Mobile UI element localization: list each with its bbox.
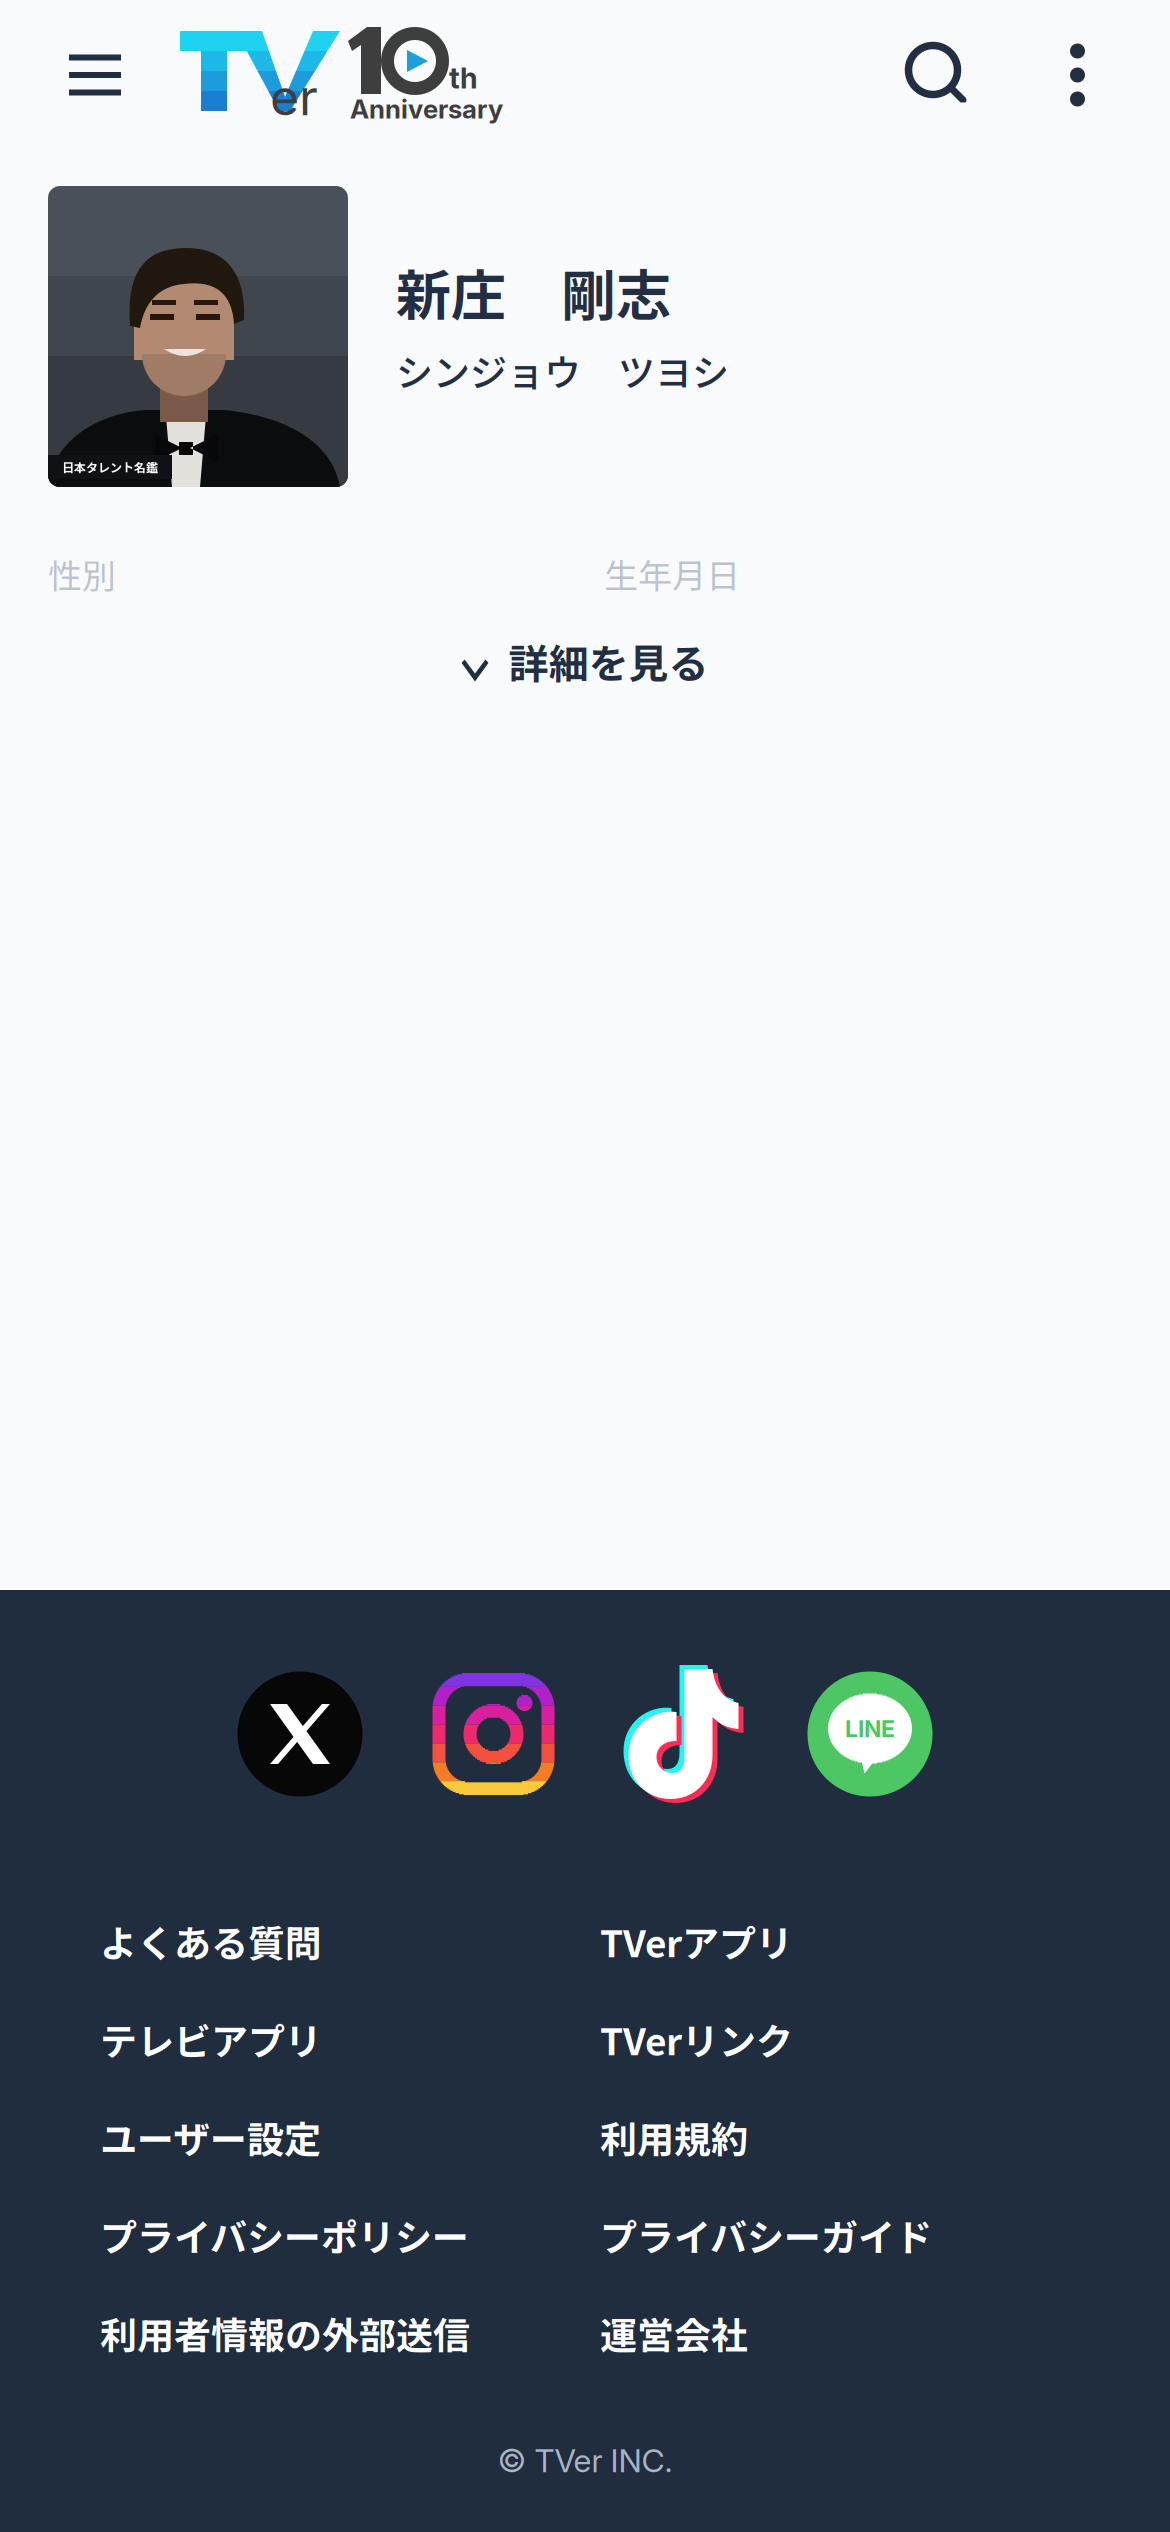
button[interactable]: Menu xyxy=(40,0,150,150)
staticText: 利用規約 xyxy=(600,2110,748,2164)
staticText: er xyxy=(270,67,318,127)
staticText: 生年月日 xyxy=(604,549,740,598)
button[interactable]: よくある質問 xyxy=(100,1892,322,1990)
staticText: 日本タレント名鑑 xyxy=(62,458,158,476)
button[interactable]: プライバシーポリシー xyxy=(100,2186,469,2284)
button[interactable]: X xyxy=(237,1671,362,1796)
button[interactable]: ユーザー設定 xyxy=(100,2088,321,2186)
staticText: テレビアプリ xyxy=(100,2012,322,2066)
staticText: TVerリンク xyxy=(600,2012,793,2066)
staticText: 詳細を見る xyxy=(508,632,708,690)
button[interactable]: LINE xyxy=(807,1671,932,1796)
staticText: Anniversary xyxy=(350,93,503,125)
button[interactable]: 詳細を見る xyxy=(0,619,1170,703)
staticText: よくある質問 xyxy=(100,1914,322,1968)
button[interactable]: Search xyxy=(858,0,1018,150)
button[interactable]: Instagram xyxy=(427,1668,559,1800)
staticText: 利用者情報の外部送信 xyxy=(100,2306,470,2360)
button[interactable]: TVer Home xyxy=(150,0,484,150)
staticText: 性別 xyxy=(48,549,116,598)
staticText: 運営会社 xyxy=(600,2306,748,2360)
button[interactable]: TVerアプリ xyxy=(600,1892,793,1990)
button[interactable]: プライバシーガイド xyxy=(600,2186,932,2284)
staticText: ユーザー設定 xyxy=(100,2110,321,2164)
staticText: th xyxy=(449,60,478,96)
staticText: © TVer INC. xyxy=(497,2441,672,2480)
staticText: LINE xyxy=(845,1715,895,1743)
staticText: プライバシーガイド xyxy=(600,2208,932,2262)
button[interactable]: 利用規約 xyxy=(600,2088,748,2186)
button[interactable]: TikTok xyxy=(624,1666,742,1802)
staticText: TVerアプリ xyxy=(600,1914,793,1968)
button[interactable]: テレビアプリ xyxy=(100,1990,322,2088)
button[interactable]: 運営会社 xyxy=(600,2284,748,2382)
button[interactable]: 利用者情報の外部送信 xyxy=(100,2284,470,2382)
button[interactable]: More options xyxy=(1018,0,1137,150)
staticText: 新庄 剛志 xyxy=(396,252,671,332)
staticText: シンジョウ ツヨシ xyxy=(396,344,729,397)
button[interactable]: TVerリンク xyxy=(600,1990,793,2088)
staticText: 1972年1月28日 xyxy=(604,614,839,663)
staticText: プライバシーポリシー xyxy=(100,2208,469,2262)
